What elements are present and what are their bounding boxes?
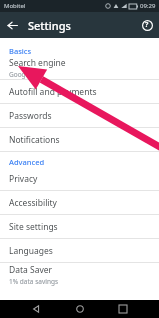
staticText: Autofill and payments: [9, 86, 97, 98]
button[interactable]: Site settings: [0, 215, 159, 238]
staticText: Passwords: [9, 110, 52, 122]
button[interactable]: Accessibility: [0, 191, 159, 214]
staticText: Notifications: [9, 134, 60, 146]
button[interactable]: Passwords: [0, 104, 159, 127]
staticText: Site settings: [9, 221, 58, 233]
staticText: Accessibility: [9, 197, 57, 209]
staticText: Data Saver: [9, 264, 53, 276]
staticText: Search engine: [9, 57, 66, 69]
button[interactable]: Notifications: [0, 128, 159, 151]
staticText: Basics: [9, 46, 32, 56]
button[interactable]: Recent apps: [115, 301, 131, 317]
staticText: 09:29: [140, 2, 156, 10]
button[interactable]: Autofill and payments: [0, 80, 159, 103]
button[interactable]: Back: [28, 301, 44, 317]
button[interactable]: Privacy: [0, 167, 159, 190]
staticText: 1% data savings: [9, 277, 59, 286]
staticText: ?: [145, 20, 149, 30]
button[interactable]: Languages: [0, 239, 159, 262]
button[interactable]: Home: [72, 301, 88, 317]
staticText: Mobitel: [4, 2, 26, 10]
button[interactable]: Data Saver: [0, 263, 159, 286]
button[interactable]: Back: [3, 16, 21, 34]
staticText: Advanced: [9, 157, 45, 167]
button[interactable]: Search engine: [0, 56, 159, 79]
staticText: Languages: [9, 245, 53, 257]
button[interactable]: Help: [139, 17, 155, 33]
staticText: Settings: [28, 18, 71, 33]
staticText: Google: [9, 70, 31, 79]
staticText: Privacy: [9, 173, 38, 185]
